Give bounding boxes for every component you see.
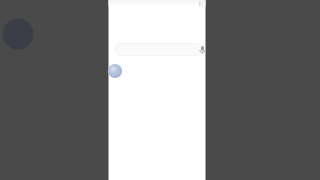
button[interactable] xyxy=(114,43,203,56)
button[interactable]: Floating chat bubble xyxy=(107,63,123,79)
button[interactable]: Voice search xyxy=(196,43,209,56)
